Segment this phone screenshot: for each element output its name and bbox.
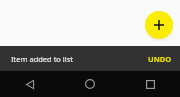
button[interactable]: Home bbox=[60, 71, 120, 97]
staticText: UNDO bbox=[148, 54, 172, 64]
button[interactable]: Back bbox=[0, 71, 60, 97]
button[interactable]: Add bbox=[145, 11, 173, 39]
staticText: Item added to list bbox=[11, 54, 74, 64]
button[interactable]: Recent apps bbox=[120, 71, 180, 97]
button[interactable]: UNDO bbox=[140, 50, 180, 68]
